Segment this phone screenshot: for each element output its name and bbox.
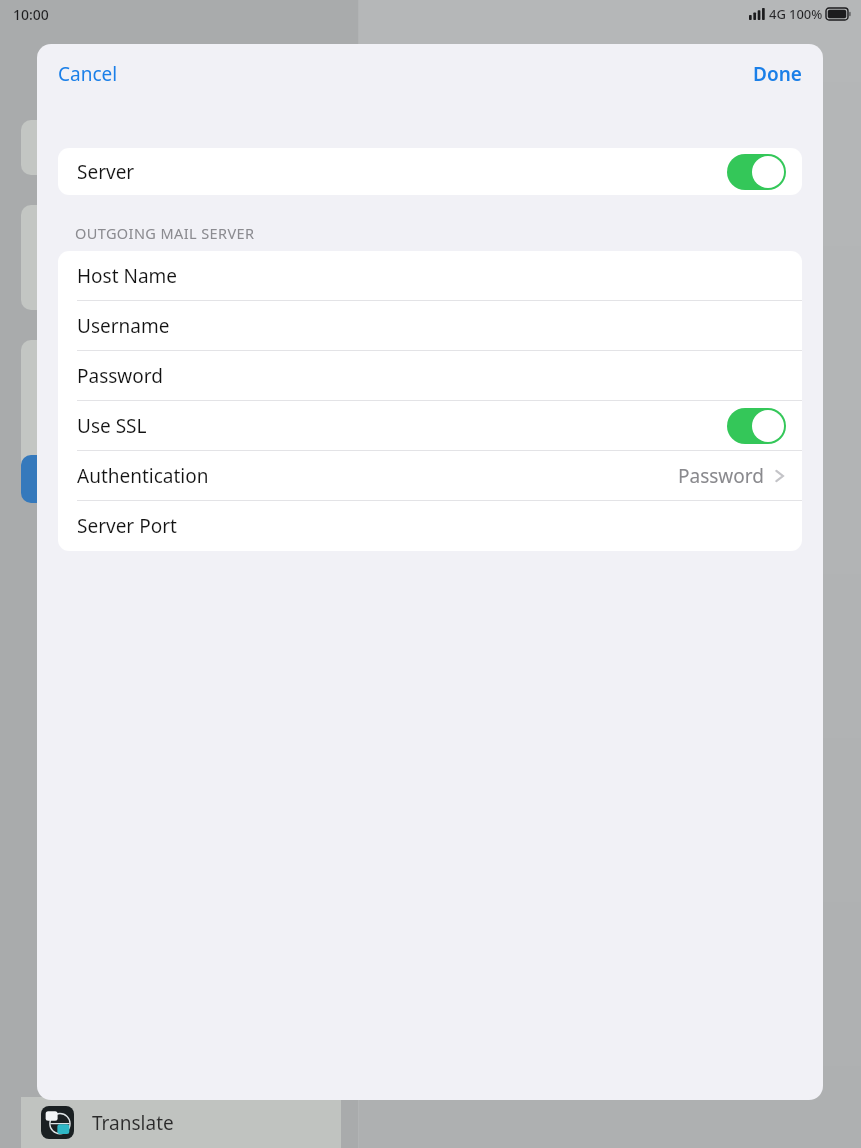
staticText: Host Name <box>77 263 178 289</box>
staticText: 10:00 <box>13 5 49 24</box>
staticText: Translate <box>92 1110 174 1136</box>
staticText: Server Port <box>77 513 177 539</box>
button[interactable]: Toggle on <box>727 154 786 190</box>
staticText: 100% <box>789 5 823 23</box>
staticText: Password <box>77 363 163 389</box>
button[interactable]: Server <box>58 148 802 195</box>
button[interactable]: Toggle on <box>727 408 786 444</box>
staticText: Authentication <box>77 463 209 489</box>
button[interactable]: Host Name <box>58 251 802 301</box>
button[interactable]: Username <box>58 301 802 351</box>
staticText: Server <box>77 159 135 185</box>
button[interactable]: Use SSL <box>58 401 802 451</box>
staticText: Use SSL <box>77 413 147 439</box>
button[interactable]: Server Port <box>58 501 802 551</box>
staticText: Username <box>77 313 170 339</box>
staticText: Done <box>753 61 802 87</box>
staticText: 4G <box>769 5 786 23</box>
button[interactable]: Done <box>740 55 815 93</box>
button[interactable]: Authentication <box>58 451 802 501</box>
button[interactable]: Cancel <box>45 55 131 93</box>
staticText: OUTGOING MAIL SERVER <box>75 223 255 243</box>
staticText: Cancel <box>58 61 118 87</box>
staticText: Password <box>678 463 764 489</box>
button[interactable]: Translate <box>21 1097 341 1148</box>
button[interactable]: Password <box>58 351 802 401</box>
